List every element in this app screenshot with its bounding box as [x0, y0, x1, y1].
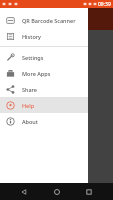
staticText: History — [22, 33, 41, 40]
button[interactable]: More Apps — [0, 65, 88, 81]
button[interactable]: About — [0, 113, 88, 129]
staticText: About — [22, 118, 38, 125]
staticText: More Apps — [22, 70, 51, 77]
button[interactable]: Recents — [80, 183, 98, 200]
button[interactable]: QR Barcode Scanner — [0, 12, 88, 28]
staticText: Share — [22, 86, 37, 93]
staticText: 09:39 — [98, 1, 111, 8]
button[interactable]: Help — [0, 97, 88, 113]
button[interactable]: Back — [15, 183, 33, 200]
button[interactable]: Home — [48, 183, 66, 200]
button[interactable]: Share — [0, 81, 88, 97]
staticText: QR Barcode Scanner — [22, 17, 76, 24]
button[interactable]: Settings — [0, 49, 88, 65]
staticText: Settings — [22, 54, 44, 61]
staticText: Help — [22, 102, 35, 109]
button[interactable]: History — [0, 28, 88, 44]
